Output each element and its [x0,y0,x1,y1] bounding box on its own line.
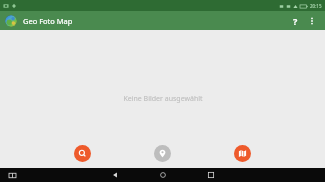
staticText: ? [293,15,298,27]
button[interactable]: Zurück [102,168,128,182]
button[interactable]: Hilfe [286,12,304,30]
button[interactable]: Startbildschirm [150,168,176,182]
button[interactable]: Karte exportieren [234,145,251,162]
button[interactable]: Standort [154,145,171,162]
button[interactable]: Übersicht [198,168,224,182]
staticText: Geo Foto Map [23,16,73,26]
staticText: Keine Bilder ausgewählt [123,94,203,104]
staticText: 20:15 [310,3,322,9]
button[interactable]: Suchen [74,145,91,162]
button[interactable]: Mehr Optionen [304,13,320,29]
button[interactable]: Geteilter Bildschirm [6,169,18,181]
